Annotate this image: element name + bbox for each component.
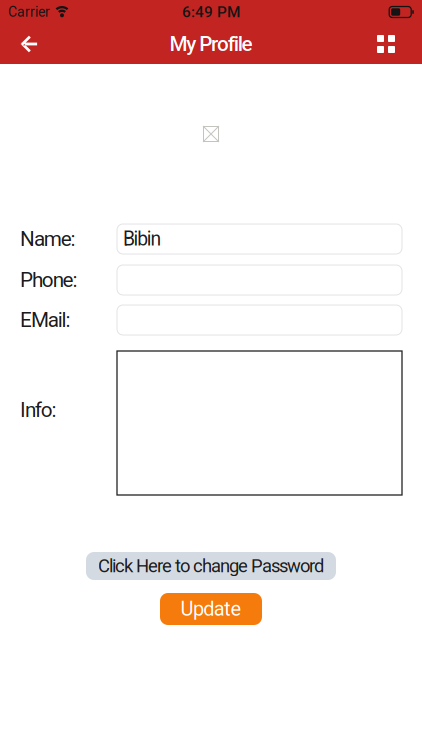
staticText: EMail:	[20, 308, 70, 332]
staticText: Click Here to change Password	[98, 555, 324, 577]
image	[203, 126, 219, 142]
staticText: Update	[180, 597, 241, 621]
staticText: Name:	[20, 227, 76, 251]
button[interactable]: Back	[7, 24, 51, 64]
staticText: Bibin	[123, 228, 161, 250]
button[interactable]: Menu	[364, 24, 408, 64]
staticText: My Profile	[169, 32, 252, 56]
button[interactable]: Click Here to change Password	[86, 552, 336, 580]
staticText: Phone:	[20, 268, 77, 292]
staticText: Info:	[20, 398, 57, 422]
button[interactable]: Update	[160, 593, 262, 625]
staticText: 6:49 PM	[182, 3, 240, 21]
staticText: Carrier	[8, 4, 50, 20]
